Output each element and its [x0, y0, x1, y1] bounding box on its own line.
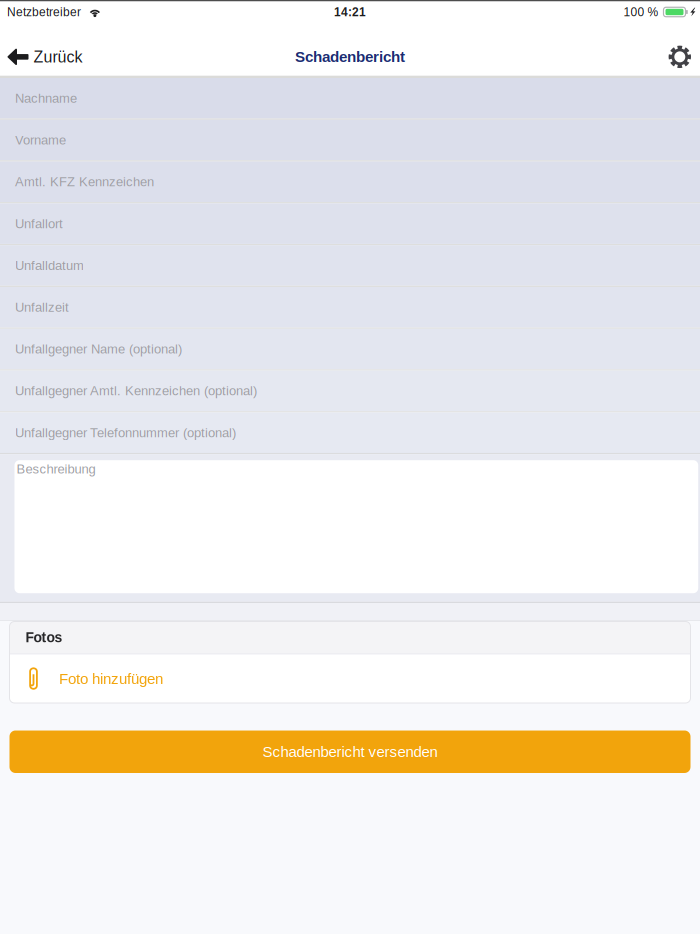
staticText: Netzbetreiber — [7, 5, 81, 19]
staticText: 14:21 — [334, 5, 366, 19]
button[interactable]: Zurück — [0, 38, 96, 76]
staticText: Unfallgegner Name (optional) — [15, 342, 182, 356]
staticText: Schadenbericht versenden — [262, 743, 437, 760]
button[interactable]: Vorname — [0, 120, 700, 160]
staticText: Amtl. KFZ Kennzeichen — [15, 175, 154, 189]
staticText: Nachname — [15, 91, 77, 105]
button[interactable]: Amtl. KFZ Kennzeichen — [0, 162, 700, 202]
staticText: Unfallort — [15, 216, 63, 231]
button[interactable]: Unfallzeit — [0, 287, 700, 327]
button[interactable]: Beschreibung — [0, 454, 700, 602]
button[interactable]: Unfallgegner Name (optional) — [0, 329, 700, 369]
staticText: Unfalldatum — [15, 258, 84, 273]
button[interactable]: Nachname — [0, 78, 700, 118]
button[interactable]: Schadenbericht versenden — [0, 703, 700, 773]
staticText: Unfallgegner Amtl. Kennzeichen (optional… — [15, 384, 257, 398]
staticText: Unfallzeit — [15, 300, 69, 314]
staticText: Vorname — [15, 133, 66, 147]
button[interactable]: Foto hinzufügen — [9, 654, 690, 703]
staticText: Beschreibung — [16, 462, 95, 476]
staticText: Unfallgegner Telefonnummer (optional) — [15, 425, 236, 440]
button[interactable]: Unfalldatum — [0, 245, 700, 286]
staticText: Zurück — [33, 48, 82, 66]
staticText: Schadenbericht — [295, 48, 405, 65]
button[interactable]: Unfallort — [0, 203, 700, 244]
staticText: Foto hinzufügen — [59, 670, 163, 687]
button[interactable]: Unfallgegner Telefonnummer (optional) — [0, 412, 700, 453]
staticText: 100 % — [623, 5, 658, 19]
button[interactable]: Einstellungen — [655, 38, 700, 76]
staticText: Fotos — [25, 630, 62, 645]
button[interactable]: Unfallgegner Amtl. Kennzeichen (optional… — [0, 371, 700, 411]
